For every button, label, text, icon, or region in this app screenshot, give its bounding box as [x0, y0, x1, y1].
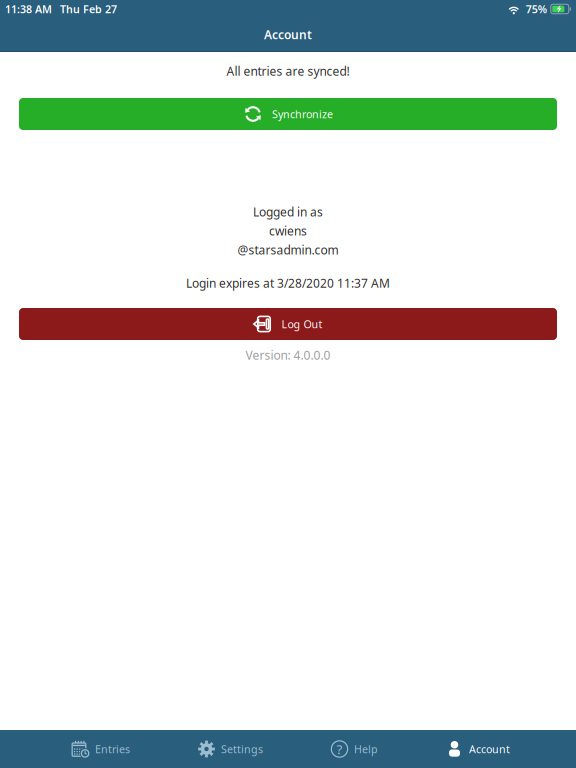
button[interactable]: Settings — [164, 730, 297, 768]
staticText: 75% — [526, 2, 547, 16]
button[interactable]: Log Out — [19, 308, 557, 340]
button[interactable]: Entries — [38, 730, 164, 768]
staticText: Log Out — [281, 317, 322, 331]
staticText: Account — [469, 742, 510, 756]
staticText: Settings — [221, 742, 263, 756]
staticText: All entries are synced! — [226, 63, 349, 79]
staticText: @starsadmin.com — [237, 242, 338, 258]
staticText: Help — [354, 742, 378, 756]
button[interactable]: Account — [412, 730, 544, 768]
staticText: Synchronize — [272, 107, 333, 121]
staticText: Entries — [95, 742, 130, 756]
staticText: Thu Feb 27 — [60, 2, 117, 16]
button[interactable]: ? — [297, 730, 412, 768]
staticText: Login expires at 3/28/2020 11:37 AM — [186, 275, 390, 291]
staticText: cwiens — [269, 223, 307, 239]
staticText: ? — [336, 740, 342, 758]
button[interactable]: Synchronize — [19, 98, 557, 130]
staticText: Version: 4.0.0.0 — [245, 347, 330, 363]
staticText: 11:38 AM — [5, 2, 52, 16]
staticText: Account — [264, 26, 312, 42]
staticText: Logged in as — [253, 204, 323, 220]
